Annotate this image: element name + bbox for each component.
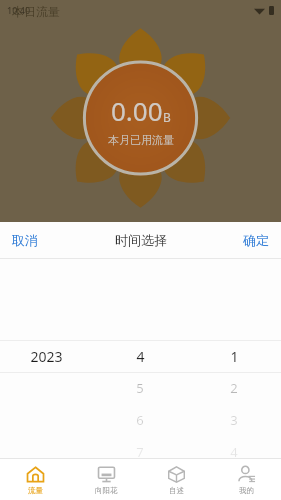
staticText: 2023 — [30, 347, 63, 366]
staticText: 1 — [230, 347, 239, 366]
staticText: 6 — [136, 411, 144, 429]
staticText: 5 — [136, 379, 144, 397]
button[interactable]: 2023 — [0, 340, 93, 372]
button[interactable]: 5 — [93, 372, 187, 404]
staticText: B — [163, 109, 171, 125]
staticText: 确定 — [243, 232, 269, 248]
staticText: 向阳花 — [95, 486, 118, 495]
staticText: 0.00 — [111, 93, 163, 128]
staticText: 10:40 — [7, 4, 31, 16]
staticText: 3 — [230, 411, 238, 429]
staticText: 本月已用流量 — [108, 133, 174, 147]
button[interactable]: 4 — [187, 436, 281, 468]
button[interactable]: 1 — [187, 340, 281, 372]
staticText: 取消 — [12, 232, 38, 248]
staticText: 2 — [230, 379, 238, 397]
button[interactable]: 我的 — [211, 459, 281, 500]
button[interactable]: 自述 — [141, 459, 211, 500]
button[interactable]: 2 — [187, 372, 281, 404]
staticText: 我的 — [239, 486, 254, 495]
staticText: 时间选择 — [115, 232, 167, 248]
staticText: 4 — [230, 443, 238, 461]
staticText: 7 — [136, 443, 144, 461]
staticText: 自述 — [169, 486, 184, 495]
staticText: 本日流量 — [12, 4, 60, 19]
staticText: 流量 — [28, 486, 43, 495]
button[interactable]: 流量 — [0, 459, 71, 500]
button[interactable]: 取消 — [0, 222, 50, 258]
button[interactable]: 4 — [93, 340, 187, 372]
button[interactable]: 向阳花 — [71, 459, 141, 500]
button[interactable]: 7 — [93, 436, 187, 468]
staticText: 4 — [136, 347, 145, 366]
button[interactable]: 确定 — [231, 222, 281, 258]
